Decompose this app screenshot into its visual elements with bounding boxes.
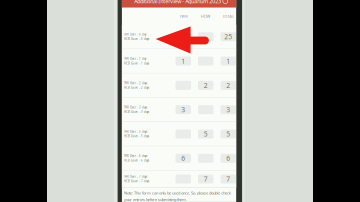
staticText: HCB Govn - 7 days — [124, 179, 149, 183]
button[interactable]: 1 — [175, 57, 191, 66]
staticText: 3 — [181, 105, 185, 114]
staticText: Note: This form can only be used once. S… — [124, 190, 231, 195]
button[interactable]: 2 — [198, 81, 213, 90]
staticText: THR Over - 3 days — [124, 106, 147, 109]
staticText: 1 — [226, 57, 230, 66]
staticText: THR Over - 6 days — [124, 154, 147, 158]
staticText: TWR — [179, 14, 187, 19]
button[interactable]: 3 — [175, 105, 191, 114]
staticText: 7 — [204, 174, 208, 183]
staticText: 25 — [224, 32, 232, 41]
staticText: HCB Govn - 5 days — [124, 134, 149, 138]
button[interactable]: 3 — [220, 105, 236, 114]
staticText: 6 — [226, 154, 230, 163]
staticText: THR Over - 2 days — [124, 81, 147, 85]
staticText: HCB Govn - 6 days — [124, 159, 149, 162]
staticText: your entries before submitting them. — [124, 197, 187, 202]
button[interactable]: 6 — [220, 154, 236, 163]
staticText: THR Over - 7 days — [124, 175, 147, 178]
staticText: HCB Govn - 0 days — [124, 37, 149, 41]
staticText: HCB Govn - 2 days — [124, 86, 149, 89]
staticText: 1 — [181, 57, 185, 66]
staticText: TOTAL — [222, 14, 234, 19]
staticText: 5 — [226, 130, 230, 138]
staticText: 5 — [204, 130, 208, 138]
button[interactable] — [198, 57, 213, 66]
button[interactable]: 25 — [220, 32, 236, 41]
button[interactable]: 7 — [198, 174, 213, 183]
button[interactable]: 5 — [220, 129, 236, 138]
staticText: HCB Govn - 3 days — [124, 110, 149, 114]
button[interactable] — [175, 32, 191, 41]
staticText: 7 — [226, 174, 230, 183]
button[interactable]: 2 — [220, 81, 236, 90]
staticText: THR Over - 5 days — [124, 130, 147, 133]
staticText: 2 — [204, 81, 208, 90]
staticText: HCB Govn - 1 days — [124, 62, 149, 65]
staticText: THR Over - 0 day — [124, 33, 146, 36]
staticText: Additional Interview - Aquarium 2023 — [134, 0, 221, 5]
button[interactable]: 5 — [198, 129, 213, 138]
staticText: 3 — [226, 105, 230, 114]
staticText: HOW — [201, 14, 211, 19]
button[interactable]: 6 — [175, 154, 191, 163]
button[interactable]: Info — [223, 0, 228, 4]
staticText: THR Over - 1 day — [124, 57, 146, 60]
staticText: 2 — [226, 81, 230, 90]
staticText: 6 — [181, 154, 185, 163]
button[interactable]: 7 — [220, 174, 236, 183]
button[interactable]: 1 — [220, 57, 236, 66]
button[interactable] — [198, 32, 213, 41]
